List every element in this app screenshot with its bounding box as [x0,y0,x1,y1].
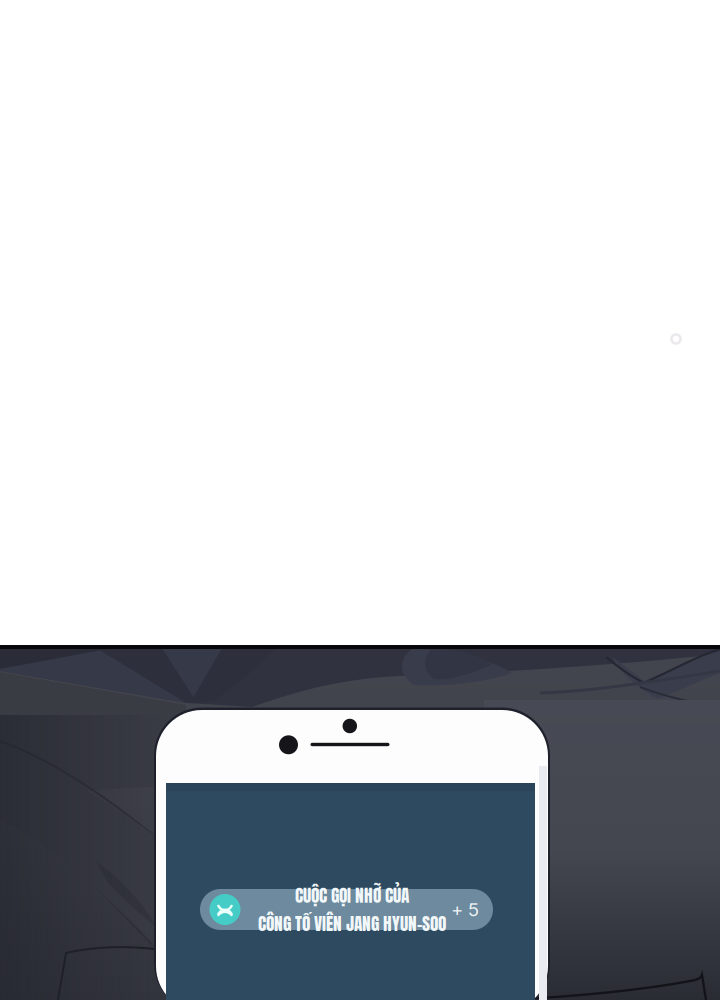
button[interactable]: Cuộc gọi nhỡ của Công tố viên Jang Hyun-… [200,889,493,930]
staticText: + 5 [451,898,479,921]
staticText: CUỘC GỌI NHỠ CỦA [295,882,409,908]
staticText: CÔNG TỐ VIÊN JANG HYUN-SOO [258,910,446,937]
